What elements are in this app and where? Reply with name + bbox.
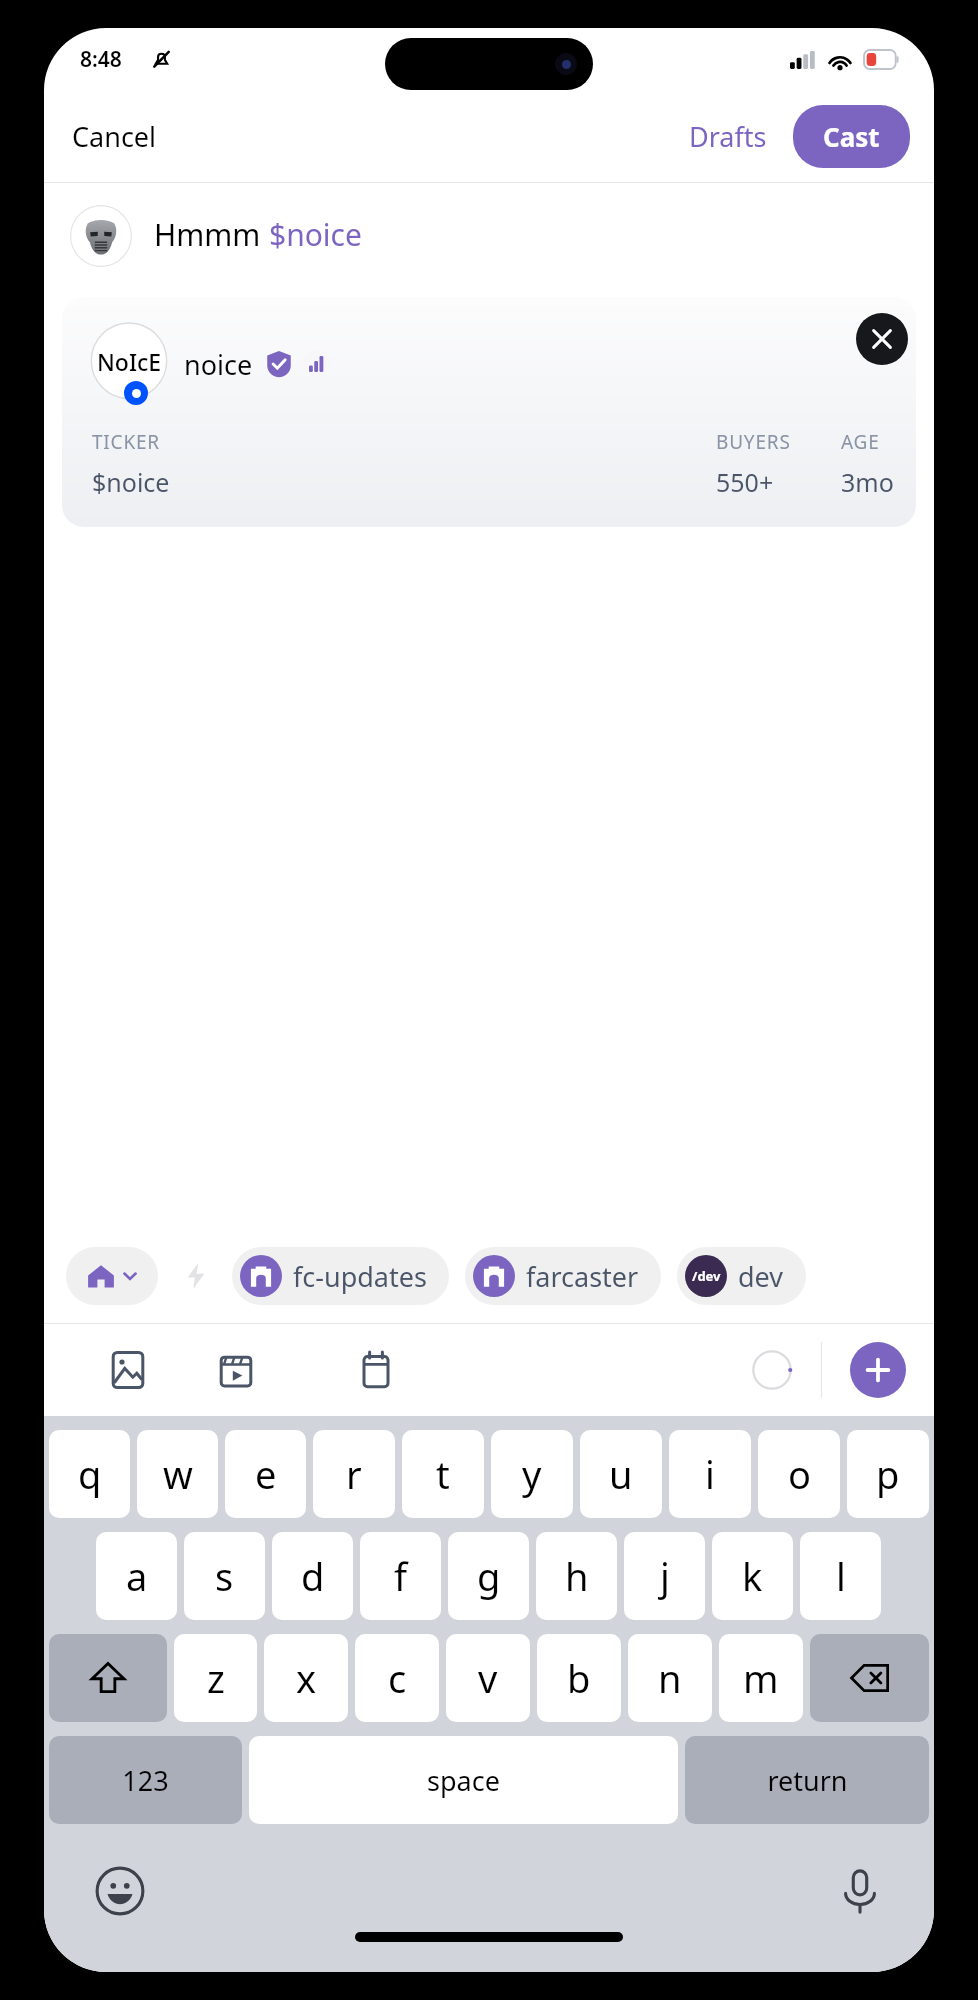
staticText: t xyxy=(436,1448,450,1500)
staticText: farcaster xyxy=(526,1258,639,1295)
button[interactable]: g xyxy=(448,1532,529,1620)
staticText: i xyxy=(705,1448,715,1500)
button[interactable]: space xyxy=(249,1736,678,1824)
button[interactable]: q xyxy=(49,1430,130,1518)
button[interactable]: u xyxy=(580,1430,662,1518)
button[interactable]: Remove embed xyxy=(856,313,908,365)
button[interactable]: w xyxy=(137,1430,218,1518)
staticText: $noice xyxy=(269,214,362,255)
staticText: g xyxy=(477,1550,501,1602)
staticText: fc-updates xyxy=(293,1258,427,1295)
staticText: s xyxy=(215,1550,234,1602)
button[interactable]: NoIcE xyxy=(62,297,916,527)
button[interactable]: k xyxy=(712,1532,793,1620)
button[interactable]: l xyxy=(800,1532,881,1620)
staticText: h xyxy=(565,1550,589,1602)
staticText: m xyxy=(743,1652,779,1704)
staticText: o xyxy=(788,1448,811,1500)
button[interactable]: e xyxy=(225,1430,306,1518)
staticText: 3mo xyxy=(841,465,894,499)
button[interactable]: z xyxy=(174,1634,257,1722)
button[interactable]: a xyxy=(96,1532,177,1620)
staticText: y xyxy=(522,1448,542,1500)
button[interactable]: Profile xyxy=(70,205,132,267)
button[interactable]: Add xyxy=(850,1342,906,1398)
button[interactable]: n xyxy=(628,1634,712,1722)
staticText: j xyxy=(660,1550,670,1602)
staticText: r xyxy=(346,1448,362,1500)
staticText: NoIcE xyxy=(97,346,162,377)
button[interactable]: v xyxy=(446,1634,530,1722)
button[interactable]: y xyxy=(491,1430,573,1518)
button[interactable]: 123 xyxy=(49,1736,242,1824)
button[interactable]: fc-updates xyxy=(232,1247,449,1305)
staticText: a xyxy=(126,1550,148,1602)
button[interactable]: Schedule xyxy=(348,1342,404,1398)
staticText: l xyxy=(836,1550,846,1602)
button[interactable]: /dev xyxy=(677,1247,806,1305)
staticText: 8:48 xyxy=(80,45,122,74)
staticText: AGE xyxy=(841,429,880,455)
button[interactable]: return xyxy=(685,1736,929,1824)
button[interactable]: Channel home xyxy=(66,1247,158,1305)
button[interactable]: i xyxy=(669,1430,751,1518)
button[interactable]: h xyxy=(536,1532,617,1620)
staticText: Cast xyxy=(823,119,880,154)
staticText: space xyxy=(427,1762,500,1799)
button[interactable]: Character count xyxy=(745,1343,799,1397)
button[interactable]: p xyxy=(847,1430,929,1518)
button[interactable]: r xyxy=(313,1430,395,1518)
staticText: d xyxy=(301,1550,325,1602)
staticText: c xyxy=(388,1652,407,1704)
staticText: TICKER xyxy=(92,429,160,455)
staticText: z xyxy=(207,1652,225,1704)
staticText: /dev xyxy=(692,1267,721,1285)
button[interactable]: x xyxy=(264,1634,348,1722)
staticText: n xyxy=(658,1652,682,1704)
button[interactable]: Emoji xyxy=(88,1859,152,1923)
staticText: e xyxy=(255,1448,277,1500)
button[interactable]: b xyxy=(537,1634,621,1722)
staticText: p xyxy=(876,1448,900,1500)
staticText: noice xyxy=(184,346,253,383)
button[interactable]: j xyxy=(624,1532,705,1620)
button[interactable]: Cancel xyxy=(44,110,185,163)
button[interactable]: m xyxy=(719,1634,803,1722)
staticText: Hmmm xyxy=(154,214,269,255)
button[interactable]: s xyxy=(184,1532,265,1620)
button[interactable]: d xyxy=(272,1532,353,1620)
button[interactable]: Boost xyxy=(176,1256,216,1296)
button[interactable]: f xyxy=(360,1532,441,1620)
staticText: u xyxy=(609,1448,633,1500)
staticText: BUYERS xyxy=(716,429,791,455)
staticText: 550+ xyxy=(716,465,774,499)
staticText: f xyxy=(394,1550,408,1602)
staticText: $noice xyxy=(92,465,170,499)
staticText: b xyxy=(567,1652,591,1704)
staticText: dev xyxy=(738,1258,784,1295)
button[interactable]: Add image xyxy=(100,1342,156,1398)
button[interactable]: Dictation xyxy=(830,1861,890,1921)
staticText: q xyxy=(78,1448,102,1500)
staticText: Drafts xyxy=(689,118,767,155)
staticText: w xyxy=(163,1448,193,1500)
button[interactable]: t xyxy=(402,1430,484,1518)
button[interactable]: Backspace xyxy=(810,1634,929,1722)
button[interactable]: Cast xyxy=(793,105,910,168)
staticText: v xyxy=(478,1652,498,1704)
button[interactable]: Drafts xyxy=(679,110,777,163)
staticText: k xyxy=(742,1550,763,1602)
staticText: return xyxy=(767,1762,848,1799)
staticText: x xyxy=(296,1652,317,1704)
button[interactable]: Add video xyxy=(208,1342,264,1398)
button[interactable]: c xyxy=(355,1634,439,1722)
staticText: Cancel xyxy=(72,118,157,155)
button[interactable]: Shift xyxy=(49,1634,167,1722)
staticText: 123 xyxy=(122,1762,169,1799)
button[interactable]: farcaster xyxy=(465,1247,661,1305)
button[interactable]: o xyxy=(758,1430,840,1518)
